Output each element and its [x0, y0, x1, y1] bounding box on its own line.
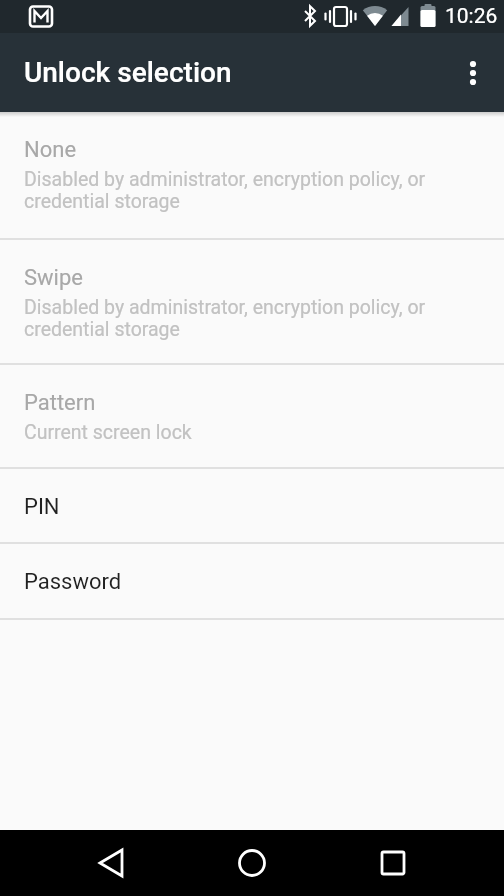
button[interactable]: None	[0, 112, 504, 238]
button[interactable]: Swipe	[0, 240, 504, 363]
button[interactable]	[168, 830, 336, 896]
button[interactable]: Pattern	[0, 365, 504, 467]
button[interactable]: PIN	[0, 469, 504, 542]
staticText: 10:26	[445, 4, 498, 29]
staticText: Disabled by administrator, encryption po…	[24, 296, 426, 341]
button[interactable]: Password	[0, 544, 504, 618]
button[interactable]	[336, 830, 504, 896]
staticText: Unlock selection	[24, 56, 232, 89]
button[interactable]	[442, 33, 504, 112]
staticText: Current screen lock	[24, 421, 192, 444]
staticText: Swipe	[24, 265, 83, 291]
staticText: Pattern	[24, 390, 96, 416]
staticText: Disabled by administrator, encryption po…	[24, 168, 426, 213]
staticText: None	[24, 137, 77, 163]
staticText: Password	[24, 569, 122, 595]
staticText: PIN	[24, 494, 60, 520]
button[interactable]	[0, 830, 168, 896]
